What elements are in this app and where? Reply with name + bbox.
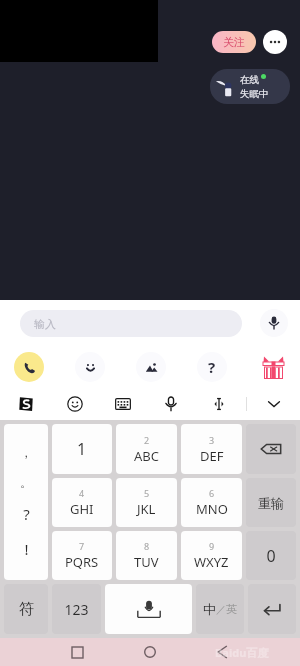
staticText: MNO	[196, 500, 228, 518]
button[interactable]: More options	[263, 30, 287, 54]
button[interactable]: 6	[181, 478, 242, 527]
button[interactable]: Back	[210, 639, 236, 665]
button[interactable]: 重输	[246, 478, 296, 527]
button[interactable]: 9	[181, 531, 242, 580]
staticText: GHI	[70, 500, 94, 518]
button[interactable]: 0	[246, 531, 296, 580]
button[interactable]: 4	[52, 478, 112, 527]
staticText: ?	[23, 504, 30, 524]
staticText: 0	[266, 545, 276, 567]
button[interactable]: Input method	[14, 392, 38, 416]
button[interactable]: ?	[197, 352, 227, 382]
staticText: 英	[226, 602, 237, 616]
button[interactable]: 8	[116, 531, 177, 580]
button[interactable]: Call	[14, 352, 44, 382]
button[interactable]: 符	[4, 584, 48, 634]
staticText: 2	[144, 434, 150, 446]
staticText: 符	[19, 600, 34, 619]
staticText: 6	[209, 487, 215, 499]
button[interactable]: 2	[116, 424, 177, 474]
button[interactable]: Enter	[248, 584, 296, 634]
staticText: 5	[144, 487, 150, 499]
button[interactable]: Backspace	[246, 424, 296, 474]
button[interactable]: Gift	[258, 352, 288, 382]
button[interactable]: Voice message	[260, 309, 288, 337]
button[interactable]: 关注	[212, 31, 256, 53]
staticText: 中	[203, 601, 216, 617]
button[interactable]: Home	[137, 639, 163, 665]
button[interactable]: Emoji	[75, 352, 105, 382]
button[interactable]: Hide keyboard	[262, 392, 286, 416]
button[interactable]: 7	[52, 531, 112, 580]
staticText: 3	[209, 434, 215, 446]
button[interactable]: Image	[136, 352, 166, 382]
staticText: JKL	[137, 500, 156, 518]
staticText: 4	[79, 487, 85, 499]
staticText: 8	[144, 540, 150, 552]
staticText: 。	[20, 475, 32, 490]
staticText: ABC	[134, 447, 159, 465]
button[interactable]: Space	[105, 584, 192, 634]
button[interactable]: Recents	[64, 639, 90, 665]
button[interactable]: ，	[4, 424, 48, 580]
button[interactable]: Keyboard layout	[111, 392, 135, 416]
button[interactable]: Voice input	[159, 392, 183, 416]
staticText: 重输	[258, 495, 284, 511]
staticText: 失眠中	[240, 88, 269, 100]
staticText: 9	[209, 540, 215, 552]
staticText: 1	[77, 438, 87, 460]
staticText: WXYZ	[194, 553, 229, 571]
button[interactable]: 123	[52, 584, 101, 634]
button[interactable]: 中	[196, 584, 244, 634]
staticText: !	[24, 539, 29, 559]
button[interactable]: Emoji panel	[63, 392, 87, 416]
button[interactable]: 5	[116, 478, 177, 527]
button[interactable]: 在线	[210, 69, 290, 104]
staticText: TUV	[134, 553, 159, 571]
staticText: DEF	[200, 447, 224, 465]
staticText: 123	[64, 600, 89, 619]
staticText: 输入	[34, 317, 56, 331]
staticText: PQRS	[65, 553, 99, 571]
staticText: ／	[216, 603, 226, 616]
button[interactable]: 1	[52, 424, 112, 474]
staticText: 关注	[223, 35, 245, 49]
button[interactable]: 3	[181, 424, 242, 474]
staticText: Baidu百度	[215, 645, 269, 660]
staticText: ，	[20, 445, 32, 460]
button[interactable]: Move cursor	[207, 392, 231, 416]
staticText: 在线	[240, 74, 259, 86]
staticText: 7	[79, 540, 85, 552]
staticText: ?	[208, 357, 216, 377]
button[interactable]: 输入	[20, 310, 242, 337]
